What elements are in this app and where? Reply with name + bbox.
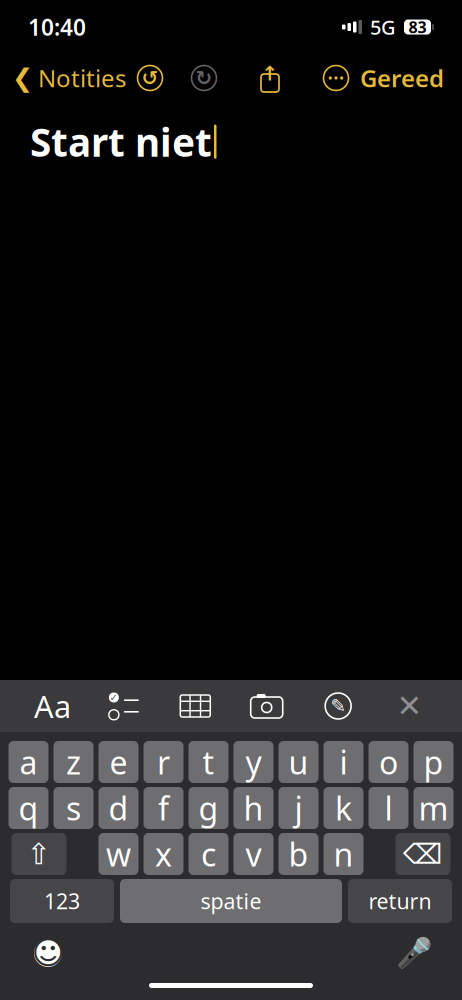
button[interactable]: w xyxy=(98,833,138,875)
staticText: e xyxy=(109,741,127,783)
button[interactable]: d xyxy=(98,787,138,829)
button[interactable]: Share xyxy=(255,62,285,93)
button[interactable]: i xyxy=(323,741,363,783)
button[interactable]: Undo xyxy=(135,63,165,93)
button[interactable]: z xyxy=(53,741,93,783)
button[interactable]: Redo xyxy=(189,63,219,93)
staticText: ✎ xyxy=(330,695,346,717)
staticText: ⇧ xyxy=(26,837,51,871)
staticText: o xyxy=(379,741,398,783)
button[interactable]: h xyxy=(233,787,273,829)
button[interactable]: v xyxy=(233,833,273,875)
button[interactable]: s xyxy=(53,787,93,829)
button[interactable]: Emoji xyxy=(26,931,70,975)
staticText: Aa xyxy=(34,686,71,726)
button[interactable]: y xyxy=(233,741,273,783)
staticText: j xyxy=(294,787,302,829)
staticText: l xyxy=(384,787,392,829)
button[interactable]: o xyxy=(368,741,408,783)
button[interactable]: Dictation xyxy=(392,931,436,975)
button[interactable]: Gereed xyxy=(360,56,462,100)
button[interactable]: p xyxy=(413,741,453,783)
staticText: c xyxy=(201,833,216,875)
button[interactable]: f xyxy=(143,787,183,829)
staticText: w xyxy=(106,833,131,875)
button[interactable]: t xyxy=(188,741,228,783)
button[interactable]: ❮ xyxy=(0,56,126,100)
staticText: d xyxy=(108,787,128,829)
button[interactable]: return xyxy=(348,879,452,923)
staticText: Start niet xyxy=(30,116,212,167)
staticText: 83 xyxy=(408,16,426,38)
button[interactable]: j xyxy=(278,787,318,829)
button[interactable]: m xyxy=(413,787,453,829)
staticText: return xyxy=(368,887,431,915)
button[interactable]: k xyxy=(323,787,363,829)
staticText: ↻ xyxy=(195,67,212,89)
staticText: g xyxy=(198,787,218,829)
button[interactable]: Table xyxy=(176,687,214,725)
button[interactable]: r xyxy=(143,741,183,783)
staticText: ⌫ xyxy=(403,838,443,870)
staticText: ❮ xyxy=(12,64,33,92)
staticText: m xyxy=(418,787,448,829)
button[interactable]: Text formatting xyxy=(33,687,71,725)
staticText: ✕ xyxy=(397,689,423,723)
button[interactable]: q xyxy=(8,787,48,829)
staticText: 123 xyxy=(44,887,80,915)
staticText: f xyxy=(158,787,169,829)
staticText: k xyxy=(335,787,352,829)
staticText: ↑ xyxy=(261,62,278,85)
staticText: 10:40 xyxy=(28,12,86,42)
staticText: t xyxy=(202,741,214,783)
staticText: s xyxy=(66,787,81,829)
button[interactable]: Close keyboard xyxy=(391,687,429,725)
button[interactable]: More options xyxy=(321,63,351,93)
staticText: Gereed xyxy=(360,62,444,94)
staticText: v xyxy=(245,833,261,875)
staticText: u xyxy=(288,741,308,783)
staticText: i xyxy=(339,741,347,783)
button[interactable]: n xyxy=(323,833,363,875)
staticText: b xyxy=(288,833,308,875)
button[interactable]: a xyxy=(8,741,48,783)
button[interactable]: Shift xyxy=(11,833,66,875)
staticText: 🎤 xyxy=(395,936,432,970)
staticText: r xyxy=(157,741,170,783)
staticText: spatie xyxy=(200,887,261,915)
staticText: ↺ xyxy=(141,67,158,89)
staticText: ☺ xyxy=(31,935,64,971)
staticText: ✓ xyxy=(110,692,118,703)
button[interactable]: l xyxy=(368,787,408,829)
staticText: y xyxy=(245,741,261,783)
staticText: x xyxy=(155,833,172,875)
button[interactable]: b xyxy=(278,833,318,875)
staticText: h xyxy=(243,787,263,829)
button[interactable]: spatie xyxy=(120,879,342,923)
staticText: q xyxy=(18,787,38,829)
staticText: n xyxy=(333,833,353,875)
button[interactable]: e xyxy=(98,741,138,783)
staticText: a xyxy=(19,741,37,783)
button[interactable]: Camera xyxy=(248,687,286,725)
staticText: z xyxy=(66,741,81,783)
staticText: Notities xyxy=(38,62,126,94)
button[interactable]: 123 xyxy=(10,879,114,923)
button[interactable]: Markup xyxy=(319,687,357,725)
button[interactable]: Delete xyxy=(395,833,450,875)
button[interactable]: x xyxy=(143,833,183,875)
button[interactable]: u xyxy=(278,741,318,783)
button[interactable]: Checklist xyxy=(105,687,143,725)
button[interactable]: g xyxy=(188,787,228,829)
staticText: 5G xyxy=(370,14,396,40)
staticText: p xyxy=(423,741,443,783)
button[interactable]: c xyxy=(188,833,228,875)
